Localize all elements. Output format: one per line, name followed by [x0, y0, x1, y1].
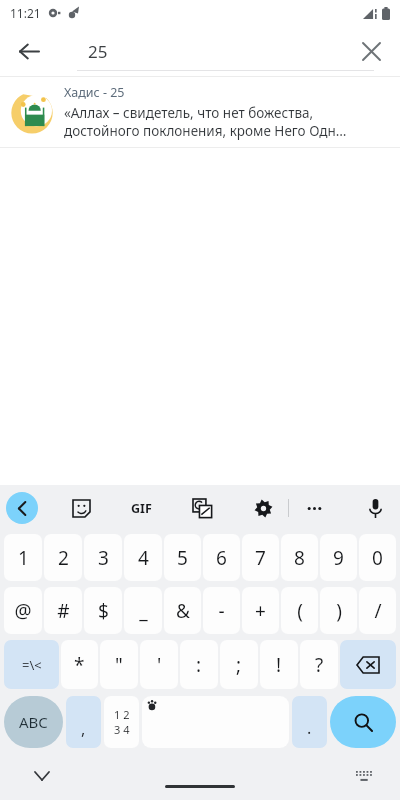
- staticText: «Аллах – свидетель, что нет божества, до…: [64, 104, 347, 140]
- button[interactable]: Switch keyboard: [348, 760, 380, 792]
- button[interactable]: Back: [8, 30, 50, 72]
- button[interactable]: 6: [203, 534, 240, 581]
- button[interactable]: ': [140, 640, 178, 689]
- button[interactable]: 9: [320, 534, 357, 581]
- staticText: 8: [294, 545, 305, 571]
- staticText: ABC: [19, 712, 48, 732]
- staticText: *: [74, 652, 85, 678]
- staticText: 0: [372, 545, 383, 571]
- staticText: ;: [236, 652, 242, 678]
- button[interactable]: /: [359, 587, 396, 634]
- staticText: _: [139, 598, 148, 624]
- staticText: Хадис - 25: [64, 84, 125, 101]
- staticText: -: [218, 598, 225, 624]
- button[interactable]: 0: [359, 534, 396, 581]
- button[interactable]: ;: [220, 640, 258, 689]
- button[interactable]: 5: [164, 534, 201, 581]
- staticText: ?: [315, 652, 324, 678]
- button[interactable]: Translate: [185, 491, 219, 525]
- button[interactable]: Hide keyboard: [26, 760, 58, 792]
- staticText: 2: [58, 545, 69, 571]
- button[interactable]: Space: [142, 696, 289, 748]
- staticText: =\<: [22, 656, 42, 674]
- staticText: 3 4: [114, 722, 130, 737]
- button[interactable]: 4: [124, 534, 162, 581]
- button[interactable]: !: [260, 640, 298, 689]
- staticText: +: [255, 598, 266, 624]
- staticText: $: [98, 598, 109, 624]
- button[interactable]: ": [100, 640, 138, 689]
- staticText: :: [196, 652, 202, 678]
- button[interactable]: :: [180, 640, 218, 689]
- button[interactable]: Settings: [246, 491, 280, 525]
- staticText: ': [157, 652, 162, 678]
- staticText: 6: [216, 545, 227, 571]
- button[interactable]: -: [203, 587, 240, 634]
- staticText: 3: [98, 545, 109, 571]
- button[interactable]: More options: [297, 491, 331, 525]
- button[interactable]: Clear: [350, 30, 392, 72]
- staticText: !: [276, 652, 282, 678]
- button[interactable]: 1: [4, 534, 42, 581]
- staticText: ): [336, 598, 342, 624]
- button[interactable]: Voice input: [358, 491, 392, 525]
- button[interactable]: GIF: [124, 491, 158, 525]
- button[interactable]: .: [292, 696, 327, 748]
- staticText: /: [374, 598, 382, 624]
- button[interactable]: 8: [281, 534, 318, 581]
- staticText: (: [297, 598, 303, 624]
- staticText: #: [57, 598, 70, 624]
- staticText: ": [115, 652, 123, 678]
- button[interactable]: #: [44, 587, 82, 634]
- staticText: 1: [18, 545, 29, 571]
- button[interactable]: Хадис - 25: [0, 77, 400, 147]
- button[interactable]: $: [84, 587, 122, 634]
- button[interactable]: &: [164, 587, 201, 634]
- button[interactable]: 2: [44, 534, 82, 581]
- button[interactable]: ): [320, 587, 357, 634]
- button[interactable]: *: [61, 640, 98, 689]
- staticText: 11:21: [10, 5, 41, 21]
- button[interactable]: Back: [6, 492, 38, 524]
- button[interactable]: @: [4, 587, 42, 634]
- staticText: 7: [255, 545, 266, 571]
- staticText: ,: [81, 718, 86, 740]
- button[interactable]: ABC: [4, 696, 63, 748]
- button[interactable]: Search: [330, 696, 396, 748]
- staticText: @: [14, 598, 32, 624]
- staticText: 25: [88, 40, 108, 63]
- button[interactable]: ,: [66, 696, 101, 748]
- staticText: 1 2: [114, 707, 130, 722]
- button[interactable]: ?: [300, 640, 338, 689]
- staticText: .: [307, 717, 312, 739]
- staticText: 4: [138, 545, 149, 571]
- button[interactable]: (: [281, 587, 318, 634]
- button[interactable]: _: [124, 587, 162, 634]
- staticText: 5: [177, 545, 188, 571]
- button[interactable]: =\<: [4, 640, 59, 689]
- staticText: &: [176, 598, 190, 624]
- button[interactable]: 7: [242, 534, 279, 581]
- button[interactable]: Numbers: [104, 696, 139, 748]
- button[interactable]: Backspace: [340, 640, 396, 689]
- button[interactable]: 3: [84, 534, 122, 581]
- button[interactable]: +: [242, 587, 279, 634]
- staticText: GIF: [131, 500, 152, 517]
- staticText: 9: [333, 545, 344, 571]
- button[interactable]: Sticker: [64, 491, 98, 525]
